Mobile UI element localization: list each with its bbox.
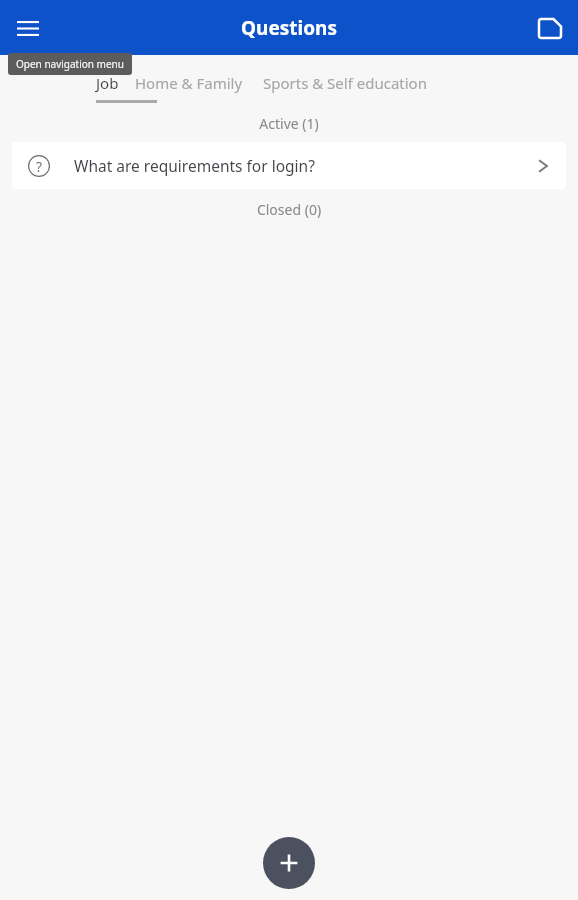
button[interactable]: ? — [12, 142, 566, 189]
staticText: ? — [36, 157, 43, 176]
staticText: What are requirements for login? — [74, 155, 315, 176]
button[interactable]: Open navigation menu — [8, 8, 48, 48]
button[interactable]: Job — [96, 55, 119, 101]
staticText: Open navigation menu — [16, 57, 124, 71]
staticText: Job — [96, 73, 119, 93]
button[interactable]: Sports & Self education — [263, 55, 427, 101]
button[interactable]: Add question — [263, 837, 315, 889]
staticText: Closed (0) — [0, 200, 578, 219]
button[interactable]: Home & Family — [135, 55, 243, 101]
staticText: Home & Family — [135, 73, 243, 93]
staticText: Active (1) — [0, 114, 578, 133]
button[interactable]: New note — [530, 8, 570, 48]
staticText: Sports & Self education — [263, 73, 427, 93]
staticText: Questions — [241, 15, 337, 41]
